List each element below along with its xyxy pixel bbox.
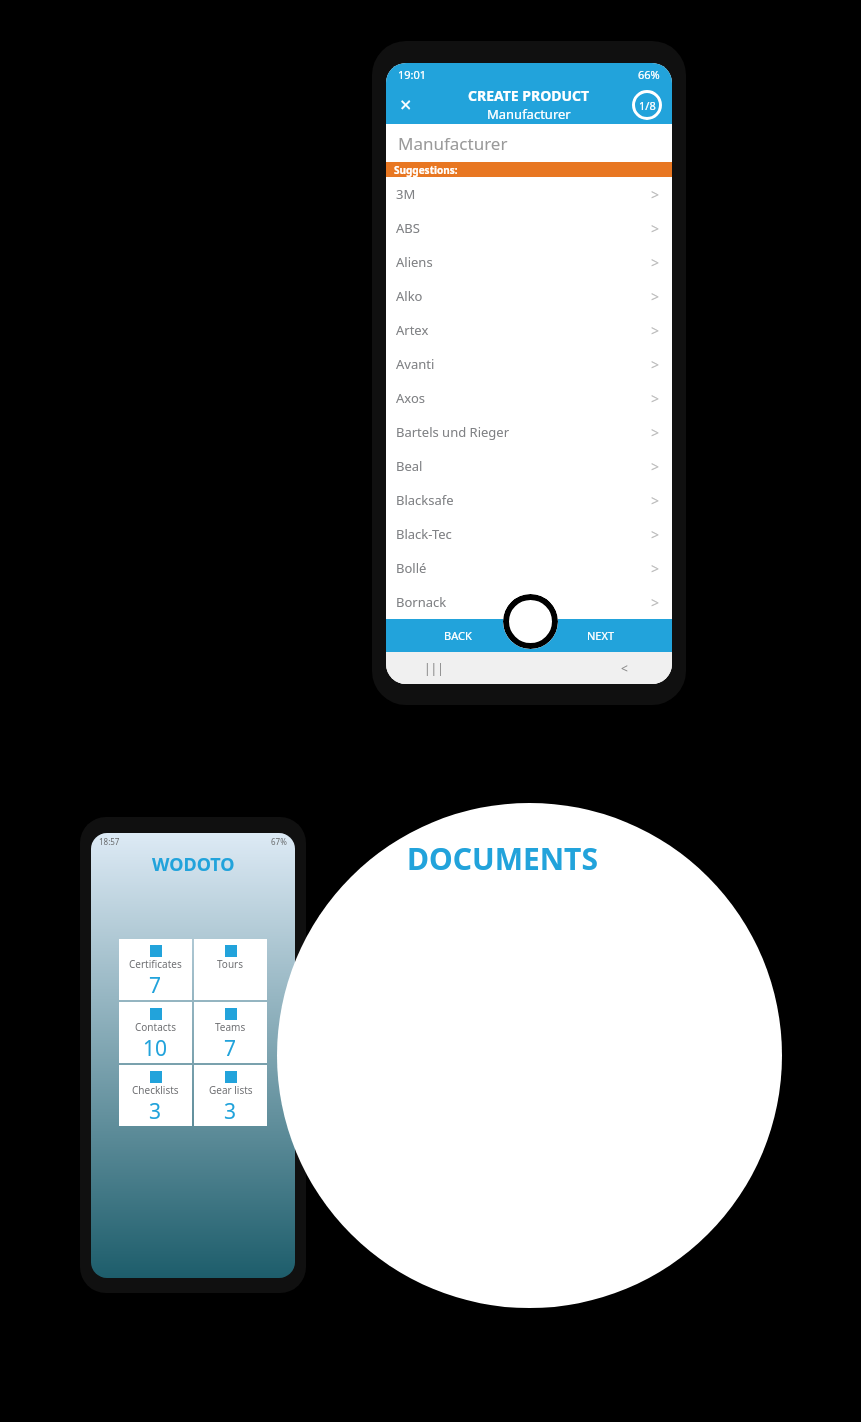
staticText: 3 bbox=[149, 1097, 162, 1126]
staticText: Artex bbox=[396, 321, 429, 339]
button[interactable]: × bbox=[400, 91, 412, 118]
button[interactable]: Avanti bbox=[386, 347, 672, 381]
staticText: > bbox=[651, 491, 660, 510]
staticText: > bbox=[651, 389, 660, 408]
button[interactable]: 3M bbox=[386, 177, 672, 211]
button[interactable]: Beal bbox=[386, 449, 672, 483]
staticText: > bbox=[651, 287, 660, 306]
button[interactable]: Black-Tec bbox=[386, 517, 672, 551]
staticText: 1/8 bbox=[639, 98, 656, 113]
staticText: < bbox=[621, 660, 628, 676]
button[interactable]: ABS bbox=[386, 211, 672, 245]
staticText: WODOTO bbox=[152, 852, 235, 877]
staticText: > bbox=[651, 253, 660, 272]
button[interactable]: Voice input bbox=[503, 594, 558, 649]
button[interactable]: Tours bbox=[194, 939, 267, 1000]
staticText: 3M bbox=[396, 185, 416, 203]
button[interactable]: Checklists bbox=[119, 1065, 192, 1126]
staticText: 66% bbox=[638, 67, 660, 82]
staticText: 7 bbox=[224, 1034, 237, 1063]
button[interactable]: BACK bbox=[386, 619, 529, 652]
staticText: Beal bbox=[396, 457, 423, 475]
staticText: 18:57 bbox=[99, 836, 120, 847]
button[interactable]: Gear lists bbox=[194, 1065, 267, 1126]
staticText: BACK bbox=[444, 628, 472, 643]
staticText: 19:01 bbox=[398, 67, 427, 82]
staticText: 10 bbox=[143, 1034, 168, 1063]
staticText: Manufacturer bbox=[398, 132, 508, 155]
staticText: NEXT bbox=[587, 628, 615, 643]
staticText: Bornack bbox=[396, 593, 447, 611]
staticText: DOCUMENTS bbox=[407, 838, 598, 879]
button[interactable]: Contacts bbox=[119, 1002, 192, 1063]
staticText: Manufacturer bbox=[487, 105, 571, 123]
staticText: 3 bbox=[224, 1097, 237, 1126]
staticText: Certificates bbox=[129, 957, 182, 971]
staticText: > bbox=[651, 457, 660, 476]
staticText: Axos bbox=[396, 389, 426, 407]
button[interactable]: Bartels und Rieger bbox=[386, 415, 672, 449]
button[interactable]: NEXT bbox=[529, 619, 672, 652]
staticText: > bbox=[651, 355, 660, 374]
staticText: > bbox=[651, 219, 660, 238]
staticText: > bbox=[651, 593, 660, 612]
staticText: Teams bbox=[215, 1020, 246, 1034]
button[interactable]: Axos bbox=[386, 381, 672, 415]
staticText: > bbox=[651, 321, 660, 340]
staticText: Suggestions: bbox=[394, 163, 458, 177]
staticText: Contacts bbox=[135, 1020, 176, 1034]
staticText: Bartels und Rieger bbox=[396, 423, 510, 441]
staticText: ABS bbox=[396, 219, 420, 237]
staticText: Checklists bbox=[132, 1083, 179, 1097]
button[interactable]: Bornack bbox=[386, 585, 672, 619]
button[interactable]: Blacksafe bbox=[386, 483, 672, 517]
staticText: Gear lists bbox=[209, 1083, 253, 1097]
staticText: > bbox=[651, 423, 660, 442]
staticText: ||| bbox=[424, 660, 444, 676]
staticText: Tours bbox=[217, 957, 244, 971]
button[interactable]: Alko bbox=[386, 279, 672, 313]
button[interactable]: Teams bbox=[194, 1002, 267, 1063]
staticText: CREATE PRODUCT bbox=[468, 86, 590, 105]
staticText: Aliens bbox=[396, 253, 433, 271]
staticText: > bbox=[651, 525, 660, 544]
button[interactable]: Bollé bbox=[386, 551, 672, 585]
staticText: > bbox=[651, 559, 660, 578]
button[interactable]: Certificates bbox=[119, 939, 192, 1000]
staticText: 7 bbox=[149, 971, 162, 1000]
staticText: Bollé bbox=[396, 559, 427, 577]
staticText: > bbox=[651, 185, 660, 204]
staticText: 67% bbox=[271, 836, 287, 847]
staticText: Blacksafe bbox=[396, 491, 454, 509]
button[interactable]: Artex bbox=[386, 313, 672, 347]
staticText: Black-Tec bbox=[396, 525, 452, 543]
staticText: Alko bbox=[396, 287, 423, 305]
staticText: Avanti bbox=[396, 355, 435, 373]
button[interactable]: Aliens bbox=[386, 245, 672, 279]
